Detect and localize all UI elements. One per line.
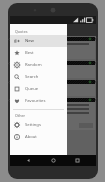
staticText: Bash bbox=[24, 26, 39, 34]
staticText: Search bbox=[25, 74, 39, 80]
staticText: Queue bbox=[25, 86, 39, 92]
button[interactable] bbox=[11, 37, 95, 59]
button[interactable]: Best bbox=[10, 47, 67, 59]
staticText: Favourites bbox=[25, 98, 46, 104]
button[interactable]: Queue bbox=[10, 83, 67, 95]
button[interactable]: Favourites bbox=[10, 95, 67, 107]
staticText: Settings bbox=[25, 122, 41, 128]
button[interactable] bbox=[11, 98, 95, 130]
staticText: Random bbox=[25, 62, 42, 68]
staticText: Quotes bbox=[15, 29, 28, 34]
button[interactable] bbox=[11, 61, 95, 78]
button[interactable]: New bbox=[10, 35, 67, 47]
button[interactable]: Recents bbox=[72, 155, 83, 166]
button[interactable]: Random bbox=[10, 59, 67, 71]
button[interactable]: Back bbox=[10, 24, 22, 36]
button[interactable]: About bbox=[10, 131, 67, 143]
button[interactable]: Home bbox=[48, 155, 59, 166]
staticText: About bbox=[25, 134, 37, 140]
staticText: Best bbox=[25, 50, 34, 56]
button[interactable]: Back bbox=[23, 155, 34, 166]
button[interactable]: Settings bbox=[10, 119, 67, 131]
button[interactable]: Search bbox=[10, 71, 67, 83]
button[interactable] bbox=[11, 80, 95, 96]
staticText: New bbox=[25, 38, 34, 44]
staticText: Other bbox=[15, 113, 26, 118]
